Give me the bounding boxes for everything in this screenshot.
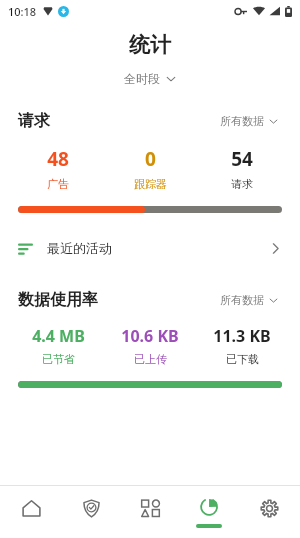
staticText: 最近的活动 (47, 240, 269, 256)
button[interactable]: 最近的活动 (0, 230, 300, 266)
button[interactable]: Statistics (181, 486, 237, 538)
staticText: 54 (231, 146, 253, 172)
staticText: 已节省 (42, 352, 75, 366)
staticText: 已下载 (226, 352, 259, 366)
staticText: 全时段 (124, 71, 160, 86)
button[interactable]: 所有数据 (216, 290, 282, 310)
staticText: 请求 (231, 177, 253, 191)
button[interactable]: 全时段 (118, 69, 182, 88)
staticText: 10.6 KB (121, 325, 179, 347)
staticText: 请求 (18, 111, 216, 131)
staticText: 48 (47, 146, 69, 172)
staticText: 11.3 KB (213, 325, 271, 347)
button[interactable]: Apps (122, 486, 178, 538)
staticText: 已上传 (134, 352, 167, 366)
staticText: 10:18 (8, 4, 37, 19)
staticText: 4.4 MB (32, 325, 85, 347)
staticText: 广告 (47, 177, 69, 191)
staticText: 所有数据 (220, 293, 264, 307)
button[interactable]: 所有数据 (216, 111, 282, 131)
button[interactable]: Home (3, 486, 59, 538)
staticText: 跟踪器 (134, 177, 167, 191)
staticText: 统计 (0, 32, 300, 58)
staticText: 数据使用率 (18, 290, 216, 310)
button[interactable]: Settings (241, 486, 297, 538)
staticText: 0 (145, 146, 156, 172)
staticText: 所有数据 (220, 114, 264, 128)
button[interactable]: Protection (63, 486, 119, 538)
